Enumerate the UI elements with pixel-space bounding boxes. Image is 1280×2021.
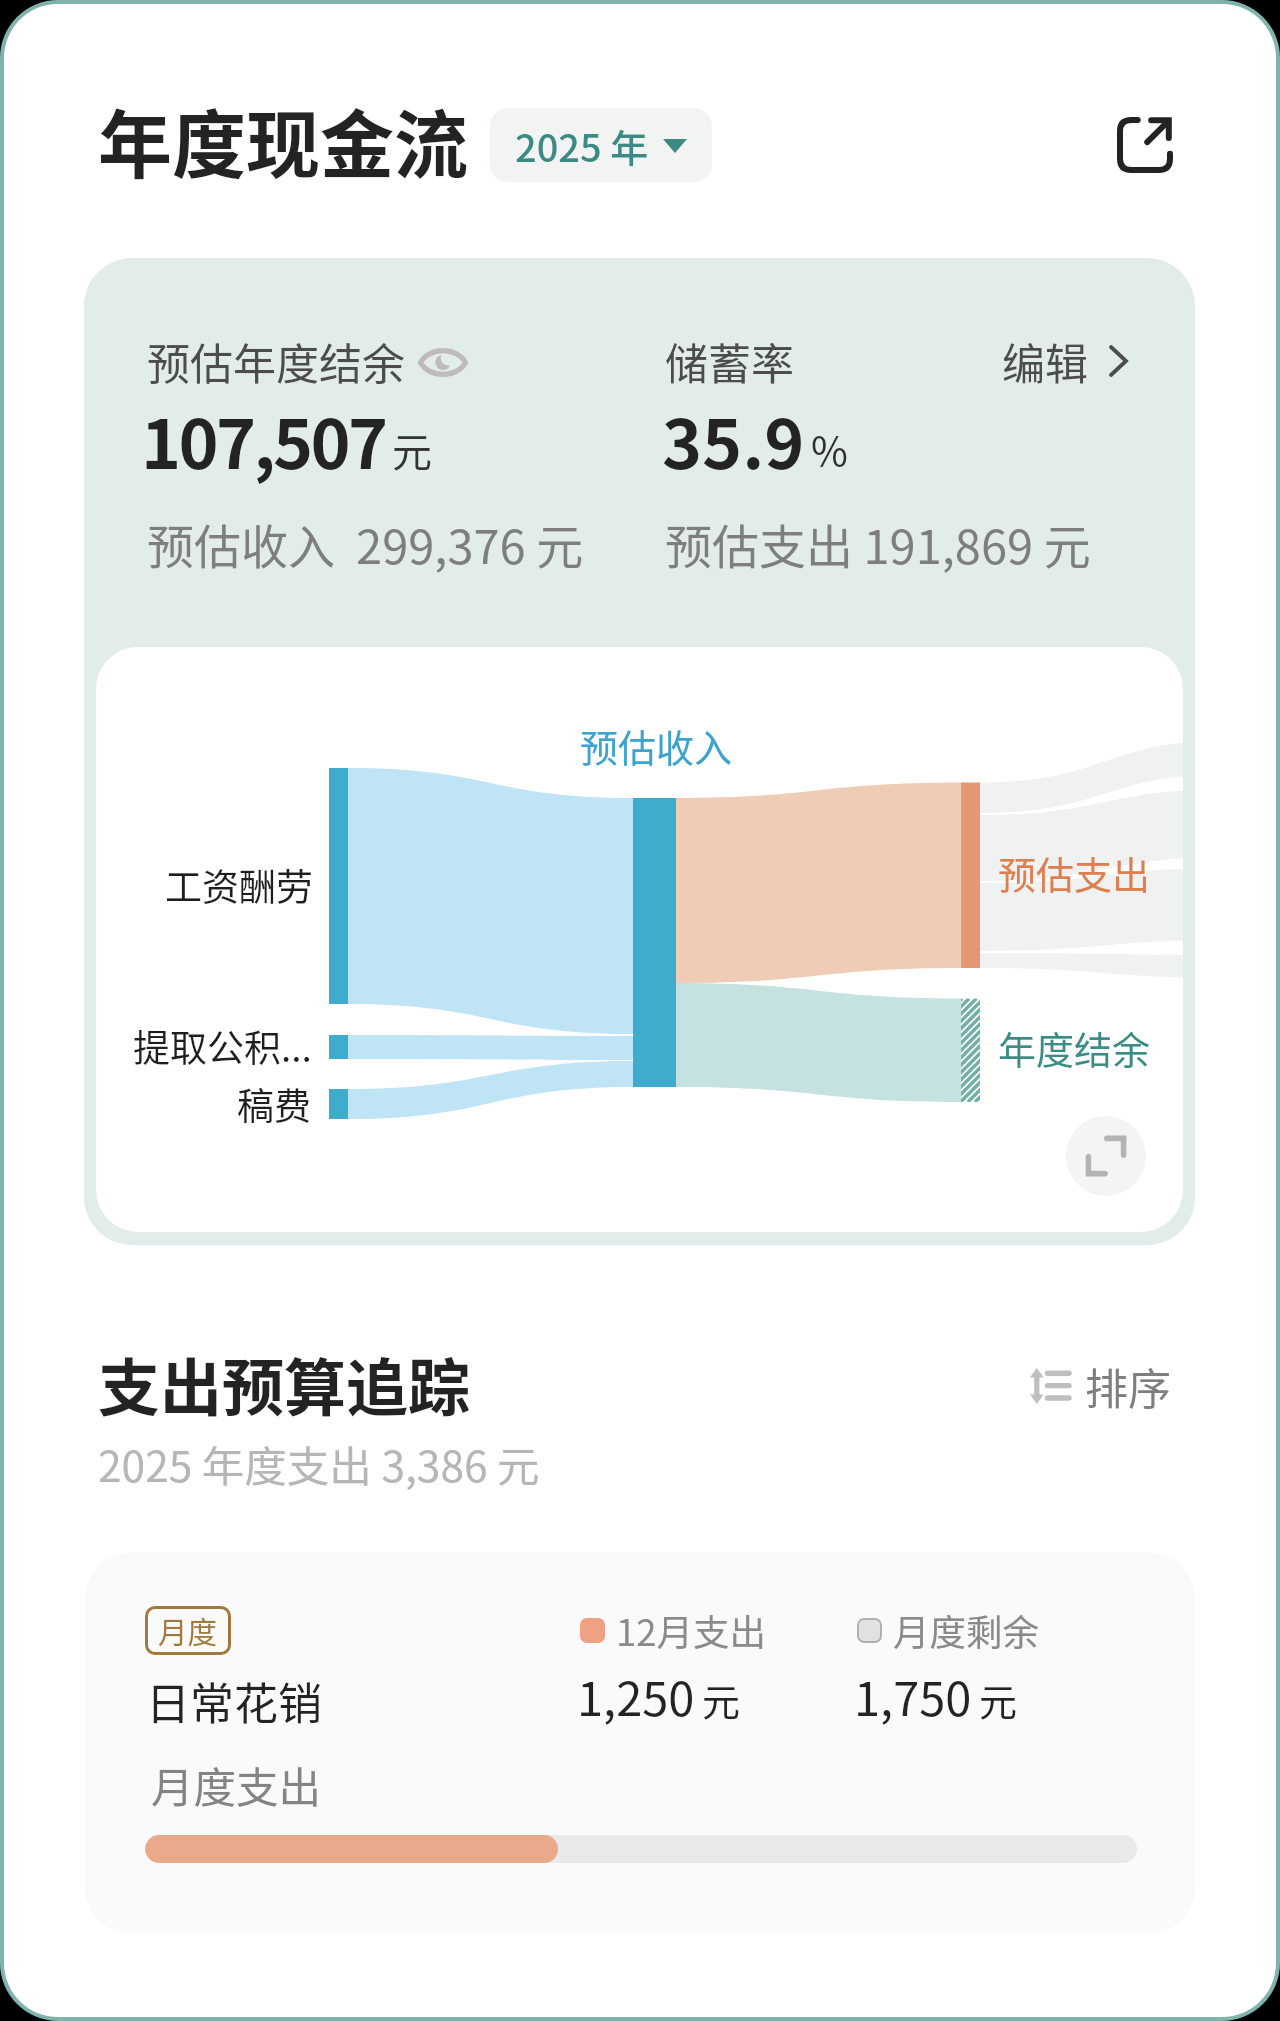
button[interactable]: 2025 年	[490, 108, 712, 182]
staticText: %	[811, 420, 848, 478]
staticText: 月度支出	[151, 1754, 322, 1816]
staticText: 1,750	[854, 1661, 972, 1729]
staticText: 预估支出	[998, 845, 1151, 900]
staticText: 预估收入 299,376 元	[147, 509, 584, 577]
button[interactable]: Expand chart	[1066, 1116, 1146, 1196]
staticText: 元	[702, 1672, 741, 1727]
staticText: 1,250	[577, 1661, 695, 1729]
staticText: 储蓄率	[665, 330, 794, 392]
staticText: 元	[979, 1672, 1018, 1727]
button[interactable]: 编辑	[990, 318, 1140, 404]
button[interactable]: 排序	[1022, 1347, 1179, 1425]
staticText: 12月支出	[616, 1604, 767, 1657]
staticText: 107,507	[141, 390, 386, 488]
staticText: 2025 年	[515, 118, 649, 173]
staticText: 日常花销	[146, 1669, 322, 1733]
staticText: 排序	[1085, 1355, 1171, 1417]
staticText: 稿费	[237, 1077, 311, 1131]
staticText: 元	[392, 421, 432, 479]
staticText: 2025 年度支出 3,386 元	[98, 1433, 540, 1495]
button[interactable]: 月度	[85, 1553, 1195, 1933]
staticText: 支出预算追踪	[98, 1339, 471, 1429]
staticText: 编辑	[1002, 330, 1088, 392]
staticText: 预估支出 191,869 元	[665, 509, 1091, 577]
staticText: 35.9	[662, 390, 805, 488]
staticText: 预估收入	[580, 718, 733, 773]
staticText: 月度剩余	[893, 1604, 1039, 1657]
staticText: 年度现金流	[98, 86, 468, 193]
staticText: 工资酬劳	[165, 858, 313, 912]
staticText: 提取公积...	[133, 1019, 312, 1073]
staticText: 月度	[158, 1609, 218, 1652]
staticText: 年度结余	[998, 1020, 1151, 1075]
staticText: 预估年度结余	[147, 330, 405, 392]
button[interactable]: Share	[1098, 98, 1192, 192]
